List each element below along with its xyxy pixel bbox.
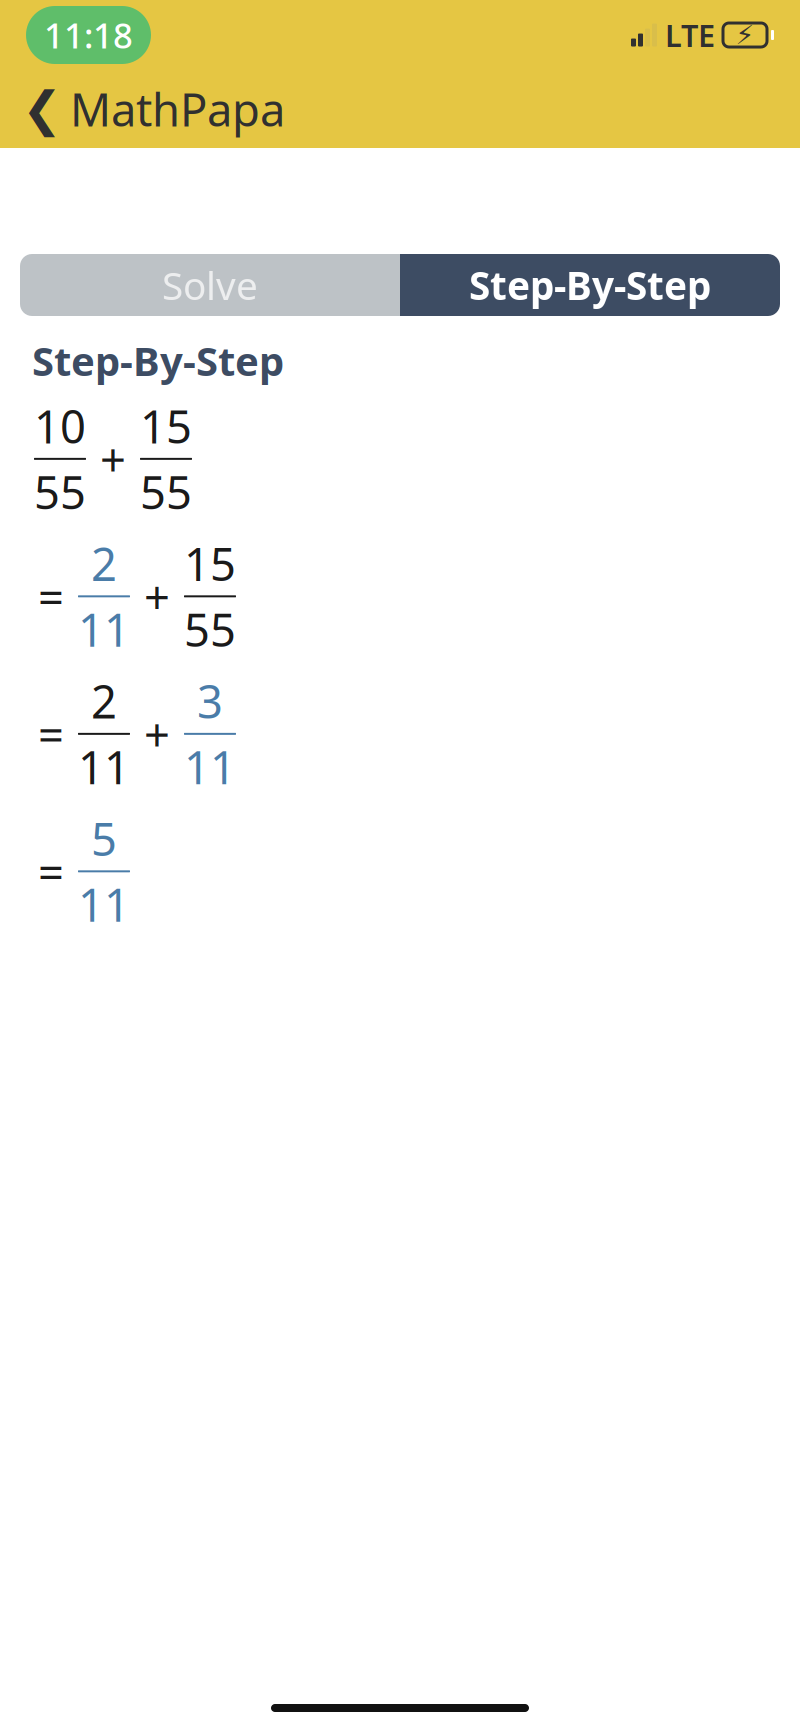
staticText: 55	[140, 461, 192, 523]
staticText: 11	[78, 736, 130, 797]
staticText: +	[100, 428, 126, 490]
staticText: 10	[34, 395, 86, 457]
staticText: ⚡︎	[735, 20, 754, 50]
staticText: MathPapa	[70, 79, 285, 139]
staticText: =	[38, 565, 64, 627]
staticText: =	[38, 703, 64, 765]
staticText: +	[144, 565, 170, 627]
staticText: ❮	[22, 82, 62, 136]
staticText: 55	[34, 461, 86, 523]
staticText: 5	[91, 808, 117, 869]
staticText: 55	[184, 598, 236, 660]
button[interactable]: Step-By-Step	[400, 254, 780, 316]
staticText: 15	[140, 395, 192, 457]
staticText: 2	[91, 670, 117, 732]
staticText: Step-By-Step	[469, 259, 711, 311]
staticText: +	[144, 703, 170, 765]
staticText: 2	[91, 533, 117, 594]
staticText: 11:18	[44, 12, 133, 58]
staticText: =	[38, 840, 64, 902]
staticText: 11	[184, 736, 236, 797]
staticText: LTE	[665, 15, 715, 55]
staticText: 15	[184, 533, 236, 594]
button[interactable]: Solve	[20, 254, 400, 316]
staticText: 11	[78, 598, 130, 660]
staticText: 11	[78, 873, 130, 935]
button[interactable]: ❮	[22, 69, 295, 149]
staticText: Step-By-Step	[32, 334, 284, 387]
staticText: Solve	[162, 259, 258, 311]
staticText: 3	[197, 670, 223, 732]
